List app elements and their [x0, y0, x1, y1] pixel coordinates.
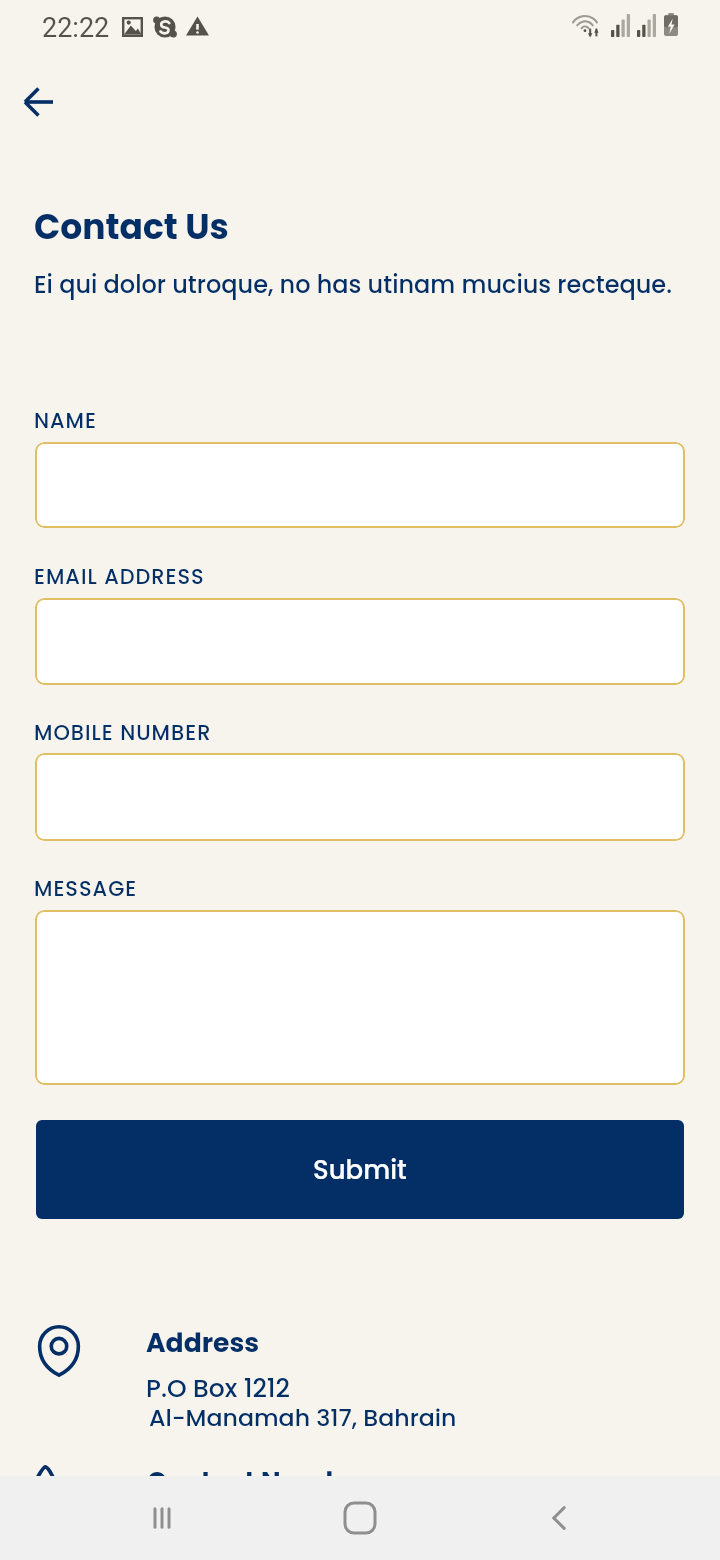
button[interactable]: Recent apps [125, 1481, 199, 1555]
staticText: MOBILE NUMBER [34, 718, 212, 747]
button[interactable]: Back [13, 76, 65, 128]
staticText: Al-Manamah 317, Bahrain [149, 1401, 457, 1434]
button[interactable]: Back [522, 1481, 596, 1555]
staticText: Ei qui dolor utroque, no has utinam muci… [34, 268, 672, 302]
button[interactable] [35, 753, 685, 841]
staticText: NAME [34, 406, 97, 435]
staticText: Submit [313, 1152, 407, 1188]
staticText: 22:22 [42, 12, 110, 44]
button[interactable]: Home [323, 1481, 397, 1555]
button[interactable] [35, 910, 685, 1085]
button[interactable] [35, 442, 685, 528]
staticText: Contact Number [147, 1464, 371, 1500]
staticText: Contact Us [34, 203, 229, 251]
staticText: EMAIL ADDRESS [34, 562, 205, 591]
staticText: P.O Box 1212 [146, 1371, 291, 1406]
staticText: MESSAGE [34, 874, 138, 903]
staticText: Address [146, 1324, 260, 1361]
button[interactable] [35, 598, 685, 685]
button[interactable]: Submit [36, 1120, 684, 1219]
